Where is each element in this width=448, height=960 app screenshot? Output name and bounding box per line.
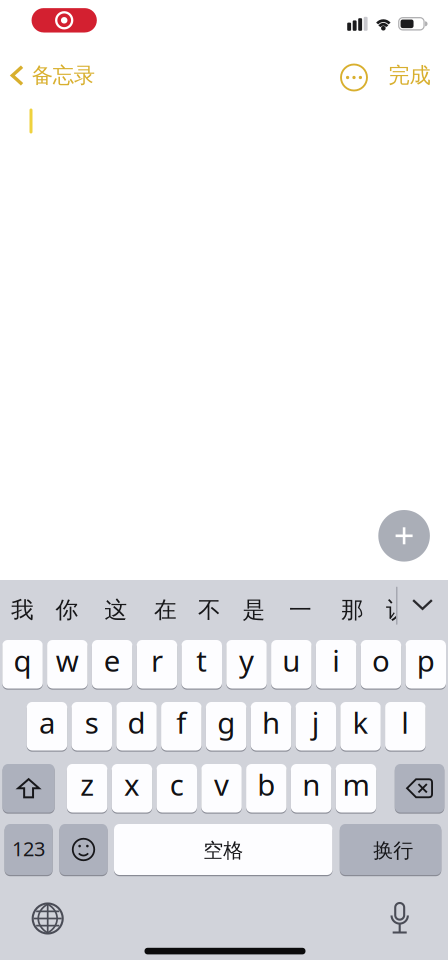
staticText: 一 (289, 596, 312, 624)
button[interactable]: Shift (3, 763, 55, 813)
staticText: 不 (198, 596, 221, 624)
staticText: h (262, 703, 280, 742)
staticText: p (417, 641, 435, 680)
button[interactable]: q (2, 639, 43, 689)
staticText: 换行 (373, 838, 413, 863)
button[interactable]: h (251, 701, 291, 751)
button[interactable]: x (112, 763, 152, 813)
button[interactable]: i (316, 639, 356, 689)
button[interactable]: Hide candidates (402, 581, 442, 627)
button[interactable]: 我 (1, 584, 43, 636)
button[interactable]: t (181, 639, 222, 689)
button[interactable]: l (385, 701, 426, 751)
staticText: w (56, 641, 79, 680)
staticText: v (214, 765, 229, 804)
button[interactable]: o (361, 639, 401, 689)
staticText: u (282, 641, 300, 680)
button[interactable]: j (295, 701, 336, 751)
staticText: 这 (104, 596, 127, 624)
button[interactable]: 这 (95, 584, 137, 636)
staticText: l (401, 703, 409, 742)
staticText: j (312, 703, 320, 742)
staticText: z (80, 765, 94, 804)
staticText: x (124, 765, 140, 804)
staticText: e (104, 641, 121, 680)
button[interactable]: Screen recording (32, 8, 97, 32)
button[interactable]: Next keyboard (24, 894, 72, 942)
button[interactable]: s (71, 701, 112, 751)
button[interactable]: Emoji (59, 823, 107, 876)
staticText: 123 (12, 835, 45, 862)
button[interactable]: Delete (395, 763, 444, 813)
staticText: 备忘录 (32, 62, 95, 89)
button[interactable]: w (47, 639, 88, 689)
button[interactable]: p (405, 639, 446, 689)
button[interactable]: b (246, 763, 287, 813)
button[interactable]: m (336, 763, 376, 813)
button[interactable]: 在 (144, 584, 186, 636)
button[interactable]: 空格 (114, 823, 332, 876)
staticText: 完成 (388, 62, 430, 89)
staticText: 那 (341, 596, 364, 624)
staticText: t (196, 641, 207, 680)
staticText: b (257, 765, 275, 804)
button[interactable]: 123 (5, 823, 53, 876)
button[interactable]: e (92, 639, 132, 689)
button[interactable]: g (206, 701, 246, 751)
button[interactable]: u (271, 639, 312, 689)
button[interactable]: 不 (188, 584, 230, 636)
staticText: 你 (55, 596, 78, 624)
button[interactable]: k (340, 701, 381, 751)
staticText: m (342, 765, 369, 804)
button[interactable]: c (156, 763, 197, 813)
button[interactable]: v (201, 763, 242, 813)
staticText: s (85, 703, 99, 742)
button[interactable]: r (137, 639, 177, 689)
button[interactable]: Add attachment (378, 510, 430, 562)
button[interactable]: a (27, 701, 67, 751)
staticText: 认 (386, 596, 409, 624)
button[interactable]: n (291, 763, 331, 813)
button[interactable]: y (226, 639, 267, 689)
staticText: 空格 (203, 838, 243, 863)
button[interactable]: d (116, 701, 157, 751)
staticText: c (170, 765, 184, 804)
staticText: k (352, 703, 368, 742)
staticText: d (128, 703, 146, 742)
button[interactable]: 是 (233, 584, 275, 636)
staticText: q (14, 641, 32, 680)
staticText: y (239, 641, 254, 680)
staticText: g (217, 703, 235, 742)
button[interactable]: Dictation (381, 893, 418, 943)
staticText: a (39, 703, 55, 742)
staticText: n (302, 765, 320, 804)
button[interactable]: More (333, 56, 375, 98)
button[interactable]: 那 (331, 584, 373, 636)
button[interactable]: f (161, 701, 202, 751)
staticText: f (176, 703, 186, 742)
staticText: r (151, 641, 163, 680)
button[interactable]: 换行 (340, 823, 441, 876)
button[interactable]: 一 (279, 584, 321, 636)
staticText: i (332, 641, 340, 680)
staticText: o (372, 641, 390, 680)
staticText: 我 (11, 596, 34, 624)
button[interactable]: 你 (46, 584, 88, 636)
button[interactable]: z (67, 763, 107, 813)
staticText: 在 (154, 596, 177, 624)
button[interactable]: 备忘录 (0, 53, 105, 98)
button[interactable]: 完成 (379, 53, 439, 98)
staticText: 是 (242, 596, 265, 624)
